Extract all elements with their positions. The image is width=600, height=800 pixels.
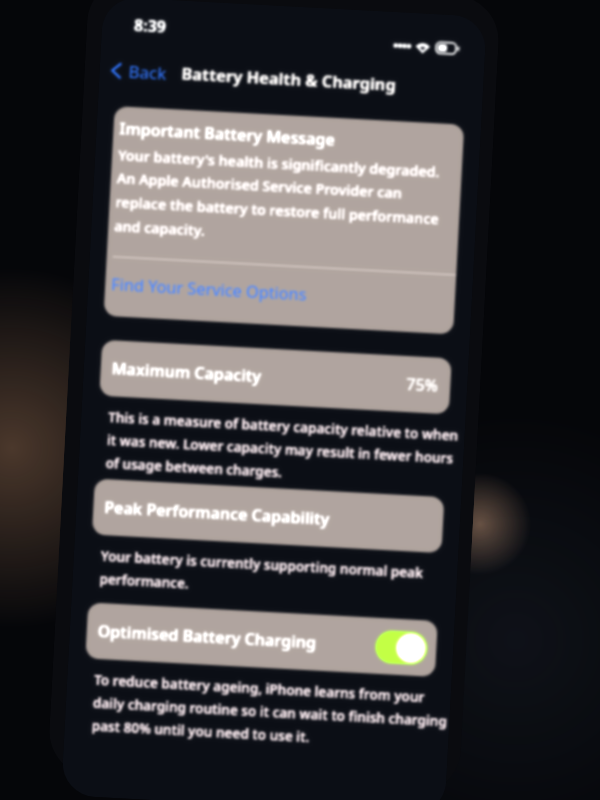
staticText: Battery Health & Charging xyxy=(181,63,397,96)
staticText: Back xyxy=(128,60,167,85)
staticText: To reduce battery ageing, iPhone learns … xyxy=(91,671,451,754)
staticText: Find Your Service Options xyxy=(111,273,308,306)
button[interactable]: Peak Performance Capability xyxy=(92,479,444,553)
button[interactable]: Find Your Service Options xyxy=(111,273,455,313)
staticText: Your battery is currently supporting nor… xyxy=(99,547,458,607)
staticText: 8:39 xyxy=(133,14,167,38)
button[interactable]: Find Your Service Options xyxy=(111,273,455,313)
staticText: Find Your Service Options xyxy=(111,273,308,306)
button[interactable]: Optimised Battery Charging toggle xyxy=(374,630,428,665)
button[interactable]: Back xyxy=(108,55,169,89)
staticText: Important Battery Message xyxy=(119,117,336,151)
staticText: 75% xyxy=(406,373,439,397)
staticText: Your battery's health is significantly d… xyxy=(114,145,457,254)
staticText: Maximum Capacity xyxy=(111,357,262,387)
staticText: Maximum Capacity xyxy=(111,357,262,387)
staticText: To reduce battery ageing, iPhone learns … xyxy=(91,671,451,754)
button[interactable]: Maximum Capacity xyxy=(99,340,452,414)
staticText: Important Battery Message xyxy=(119,117,336,151)
staticText: Optimised Battery Charging xyxy=(97,620,317,654)
staticText: Back xyxy=(128,60,167,85)
staticText: Your battery is currently supporting nor… xyxy=(99,547,458,607)
staticText: This is a measure of battery capacity re… xyxy=(105,408,465,491)
button[interactable]: Back xyxy=(108,55,169,89)
staticText: Peak Performance Capability xyxy=(104,496,331,530)
button[interactable]: Peak Performance Capability xyxy=(92,479,444,553)
button[interactable]: Optimised Battery Charging toggle xyxy=(374,630,428,665)
staticText: Optimised Battery Charging xyxy=(97,620,317,654)
staticText: 75% xyxy=(406,373,439,397)
staticText: This is a measure of battery capacity re… xyxy=(105,408,465,491)
staticText: Peak Performance Capability xyxy=(104,496,331,530)
button[interactable]: Maximum Capacity xyxy=(99,340,452,414)
staticText: Battery Health & Charging xyxy=(181,63,397,96)
staticText: Your battery's health is significantly d… xyxy=(114,145,457,254)
staticText: 8:39 xyxy=(133,14,167,38)
